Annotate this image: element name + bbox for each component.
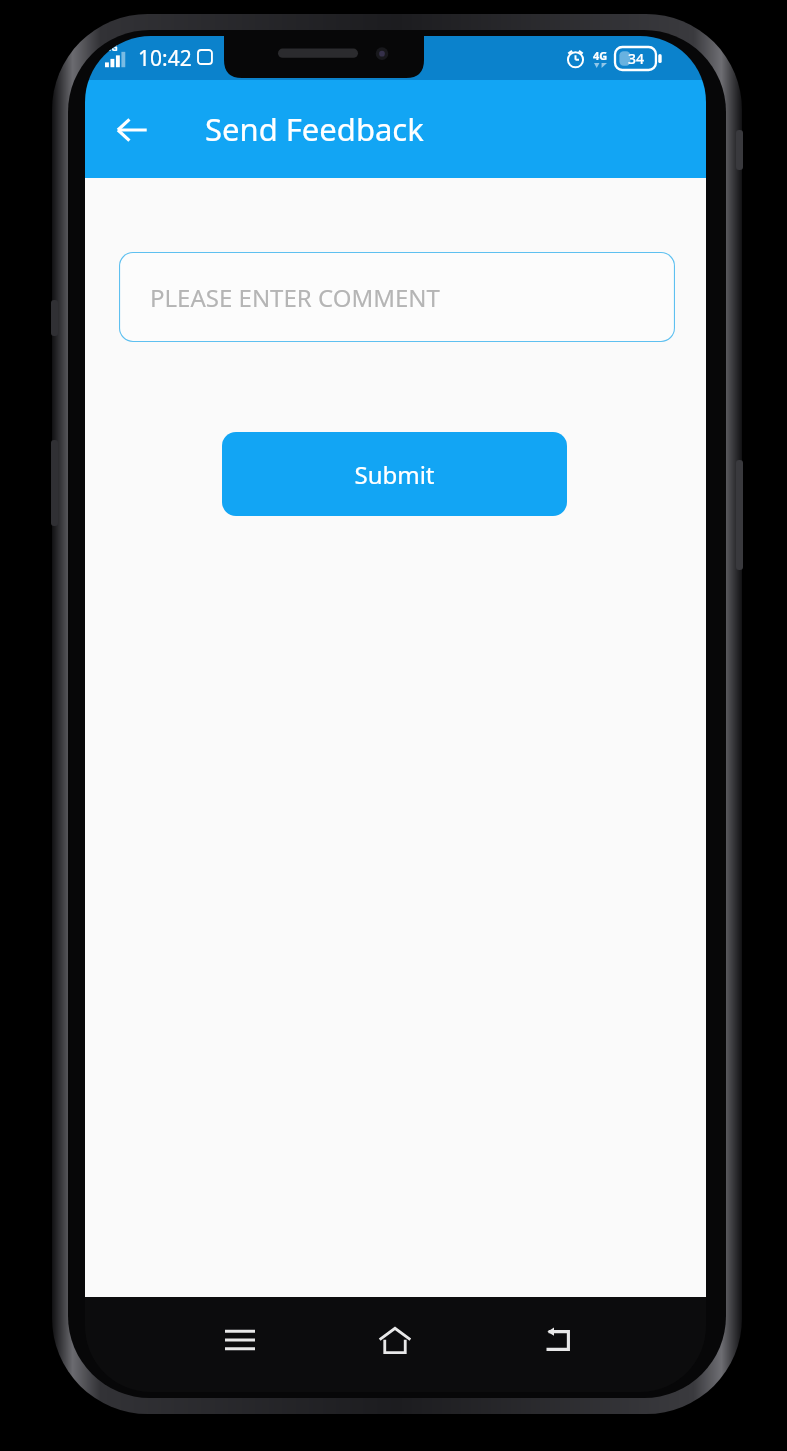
staticText: Submit xyxy=(354,458,435,491)
button[interactable]: Recent apps xyxy=(211,1311,269,1369)
button[interactable]: PLEASE ENTER COMMENT xyxy=(119,252,675,342)
staticText: 4G xyxy=(593,48,608,63)
button[interactable]: Home xyxy=(366,1311,424,1369)
button[interactable]: Back xyxy=(107,105,157,155)
staticText: Send Feedback xyxy=(205,108,424,150)
button[interactable]: Submit xyxy=(222,432,567,516)
button[interactable]: Back xyxy=(531,1311,589,1369)
staticText: PLEASE ENTER COMMENT xyxy=(150,281,440,314)
staticText: 34 xyxy=(628,49,645,68)
staticText: 10:42 xyxy=(138,44,192,72)
staticText: 4G xyxy=(106,41,118,53)
